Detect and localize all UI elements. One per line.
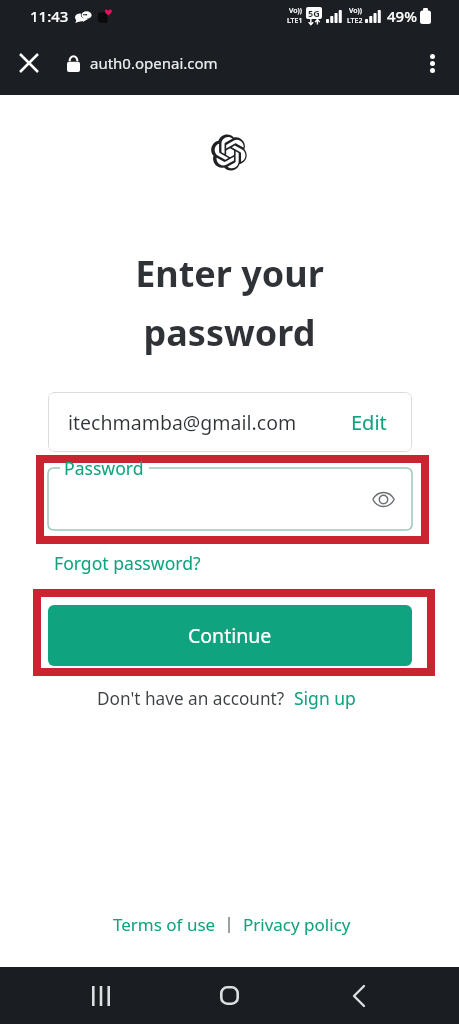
button[interactable]: Close [10,44,48,82]
staticText: Continue [188,622,272,649]
staticText: Forgot password? [54,551,201,575]
button[interactable]: Back [294,967,423,1024]
button[interactable]: Terms of use [113,913,216,936]
staticText: Enter your password [135,249,324,356]
button[interactable]: Privacy policy [243,913,351,936]
button[interactable]: itechmamba@gmail.com [48,392,412,452]
staticText: Vo)) [289,6,302,16]
staticText: 5G [308,7,320,19]
staticText: 49% [387,6,417,26]
staticText: Edit [351,409,387,436]
button[interactable]: Forgot password? [48,547,207,579]
staticText: LTE1 [287,16,303,26]
button[interactable]: Home [165,967,294,1024]
staticText: auth0.openai.com [90,53,218,73]
button[interactable]: Recent apps [36,967,165,1024]
button[interactable]: Show password [367,483,399,515]
staticText: 11:43 [30,6,69,26]
staticText: Password [64,456,144,480]
button[interactable]: Continue [48,605,412,666]
staticText: Sign up [294,686,356,710]
staticText: Vo)) [349,6,362,16]
staticText: LTE2 [347,16,363,26]
staticText: Terms of use [113,913,216,936]
button[interactable]: Sign up [294,686,356,710]
staticText: Privacy policy [243,913,351,936]
button[interactable]: Password [48,468,412,530]
button[interactable]: More options [413,44,451,82]
staticText: itechmamba@gmail.com [68,409,297,436]
staticText: Don't have an account? [97,687,285,710]
